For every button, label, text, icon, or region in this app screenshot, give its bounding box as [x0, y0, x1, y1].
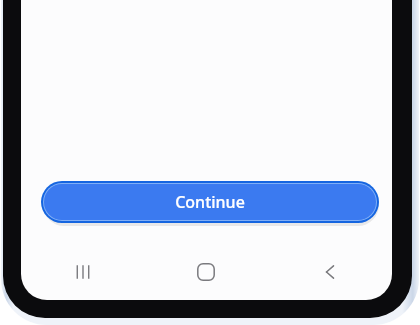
button[interactable]: Recent apps	[21, 247, 144, 297]
button[interactable]: Back	[268, 247, 392, 297]
button[interactable]: Continue	[41, 181, 379, 223]
button[interactable]: Home	[144, 247, 268, 297]
staticText: Continue	[175, 191, 245, 213]
